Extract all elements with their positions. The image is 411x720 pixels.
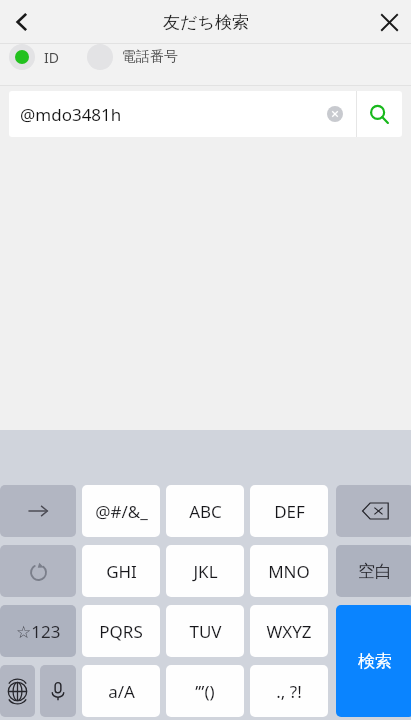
button[interactable]: GHI bbox=[82, 545, 160, 597]
staticText: 友だち検索 bbox=[163, 12, 249, 33]
staticText: PQRS bbox=[99, 620, 143, 643]
button[interactable]: Key bbox=[0, 665, 35, 717]
staticText: DEF bbox=[274, 500, 305, 523]
staticText: JKL bbox=[193, 560, 218, 583]
button[interactable]: Close bbox=[367, 0, 411, 44]
button[interactable]: JKL bbox=[166, 545, 244, 597]
staticText: ID bbox=[44, 48, 59, 67]
staticText: WXYZ bbox=[266, 620, 312, 643]
staticText: ’”() bbox=[195, 680, 215, 703]
button[interactable]: 空白 bbox=[336, 545, 411, 597]
staticText: a/A bbox=[108, 680, 135, 703]
button[interactable]: Back bbox=[0, 0, 44, 44]
staticText: 電話番号 bbox=[122, 48, 178, 66]
button[interactable]: Key bbox=[40, 665, 76, 717]
staticText: @#/&_ bbox=[95, 500, 148, 523]
staticText: @mdo3481h bbox=[20, 103, 318, 126]
button[interactable]: MNO bbox=[250, 545, 328, 597]
staticText: TUV bbox=[189, 620, 222, 643]
staticText: 空白 bbox=[358, 561, 392, 582]
button[interactable]: ID bbox=[9, 44, 59, 70]
button[interactable]: Key bbox=[336, 485, 411, 537]
button[interactable]: ’”() bbox=[166, 665, 244, 717]
button[interactable]: Key bbox=[0, 545, 76, 597]
staticText: ABC bbox=[189, 500, 222, 523]
button[interactable]: 検索 bbox=[336, 605, 411, 717]
staticText: 検索 bbox=[358, 651, 392, 672]
button[interactable]: PQRS bbox=[82, 605, 160, 657]
button[interactable]: TUV bbox=[166, 605, 244, 657]
staticText: GHI bbox=[106, 560, 137, 583]
button[interactable]: Search bbox=[357, 91, 402, 137]
button[interactable]: ., ?! bbox=[250, 665, 328, 717]
button[interactable]: DEF bbox=[250, 485, 328, 537]
staticText: ., ?! bbox=[276, 680, 302, 703]
button[interactable]: Clear bbox=[318, 97, 352, 131]
button[interactable]: ☆123 bbox=[0, 605, 76, 657]
button[interactable]: a/A bbox=[82, 665, 160, 717]
staticText: ☆123 bbox=[16, 620, 61, 643]
button[interactable]: 電話番号 bbox=[87, 44, 178, 70]
button[interactable]: WXYZ bbox=[250, 605, 328, 657]
button[interactable]: Key bbox=[0, 485, 76, 537]
staticText: MNO bbox=[268, 560, 310, 583]
button[interactable]: ABC bbox=[166, 485, 244, 537]
button[interactable]: @#/&_ bbox=[82, 485, 160, 537]
